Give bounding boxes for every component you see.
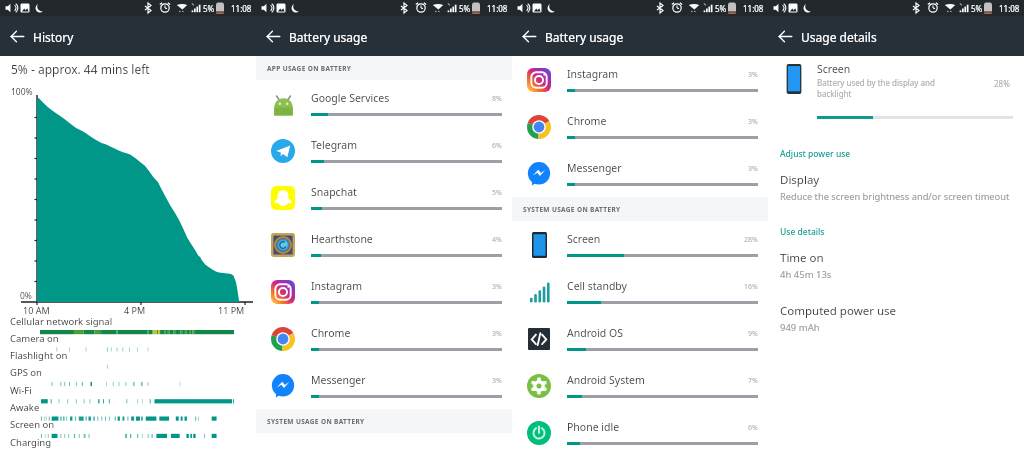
- staticText: Battery usage: [289, 29, 368, 45]
- button[interactable]: Hearthstone: [256, 221, 512, 268]
- button[interactable]: Instagram: [512, 56, 768, 103]
- staticText: 8%: [492, 94, 502, 104]
- staticText: 3%: [748, 70, 758, 80]
- staticText: Hearthstone: [311, 232, 373, 246]
- button[interactable]: Display: [780, 172, 1016, 203]
- staticText: Screen: [567, 232, 601, 246]
- staticText: History: [33, 29, 74, 45]
- staticText: 5%: [715, 3, 727, 14]
- staticText: 3%: [492, 282, 502, 292]
- button[interactable]: Time on: [780, 250, 1016, 281]
- staticText: Android System: [567, 373, 645, 387]
- button[interactable]: Screen: [512, 221, 768, 268]
- staticText: 11:08: [999, 3, 1020, 14]
- button[interactable]: Adjust power use: [780, 148, 851, 160]
- staticText: 5% - approx. 44 mins left: [11, 61, 150, 77]
- staticText: 7%: [748, 376, 758, 386]
- staticText: Instagram: [311, 279, 363, 293]
- button[interactable]: Snapchat: [256, 174, 512, 221]
- button[interactable]: Back: [512, 19, 546, 53]
- staticText: Computed power use: [780, 303, 897, 319]
- staticText: GPS on: [10, 366, 42, 379]
- staticText: Charging: [10, 436, 52, 449]
- staticText: 28%: [744, 235, 758, 245]
- staticText: Display: [780, 172, 820, 188]
- staticText: Flashlight on: [10, 349, 68, 362]
- staticText: APP USAGE ON BATTERY: [267, 64, 352, 73]
- button[interactable]: Phone idle: [512, 409, 768, 456]
- staticText: Chrome: [567, 114, 607, 128]
- staticText: 0%: [20, 290, 32, 302]
- button[interactable]: Instagram: [256, 268, 512, 315]
- staticText: Chrome: [311, 326, 351, 340]
- staticText: 4 PM: [124, 304, 146, 316]
- staticText: Wi-Fi: [10, 384, 32, 397]
- staticText: 4%: [492, 235, 502, 245]
- staticText: Android OS: [567, 326, 623, 340]
- staticText: 3%: [492, 376, 502, 386]
- staticText: 16%: [744, 282, 758, 292]
- staticText: Messenger: [311, 373, 366, 387]
- staticText: 9%: [748, 329, 758, 339]
- button[interactable]: Computed power use: [780, 303, 1016, 334]
- button[interactable]: Back: [256, 19, 290, 53]
- staticText: 11:08: [231, 3, 252, 14]
- staticText: Cellular network signal: [10, 315, 113, 328]
- button[interactable]: Use details: [780, 226, 825, 238]
- staticText: 6%: [492, 141, 502, 151]
- button[interactable]: Android System: [512, 362, 768, 409]
- staticText: 3%: [492, 329, 502, 339]
- button[interactable]: Messenger: [256, 362, 512, 409]
- staticText: 3%: [748, 164, 758, 174]
- button[interactable]: Cell standby: [512, 268, 768, 315]
- button[interactable]: Telegram: [256, 127, 512, 174]
- staticText: Time on: [780, 250, 824, 266]
- staticText: 5%: [459, 3, 471, 14]
- staticText: 3%: [748, 117, 758, 127]
- staticText: Camera on: [10, 332, 59, 345]
- staticText: Battery usage: [545, 29, 624, 45]
- button[interactable]: Chrome: [256, 315, 512, 362]
- staticText: 11:08: [487, 3, 508, 14]
- button[interactable]: Android OS: [512, 315, 768, 362]
- staticText: 949 mAh: [780, 321, 820, 334]
- staticText: Usage details: [801, 29, 877, 45]
- staticText: Battery used by the display and backligh…: [817, 77, 943, 99]
- staticText: 28%: [994, 78, 1010, 89]
- button[interactable]: Google Services: [256, 80, 512, 127]
- staticText: 5%: [971, 3, 983, 14]
- staticText: SYSTEM USAGE ON BATTERY: [267, 417, 365, 426]
- staticText: Cell standby: [567, 279, 627, 293]
- button[interactable]: Messenger: [512, 150, 768, 197]
- staticText: Screen: [817, 62, 851, 76]
- staticText: 4h 45m 13s: [780, 268, 832, 281]
- staticText: Awake: [10, 401, 40, 414]
- staticText: Phone idle: [567, 420, 620, 434]
- staticText: SYSTEM USAGE ON BATTERY: [523, 205, 621, 214]
- staticText: Instagram: [567, 67, 619, 81]
- staticText: 11 PM: [218, 304, 245, 316]
- staticText: 5%: [203, 3, 215, 14]
- staticText: Messenger: [567, 161, 622, 175]
- button[interactable]: Back: [0, 19, 34, 53]
- staticText: 10 AM: [23, 304, 50, 316]
- button[interactable]: Back: [768, 19, 802, 53]
- button[interactable]: Chrome: [512, 103, 768, 150]
- staticText: Telegram: [311, 138, 357, 152]
- staticText: Google Services: [311, 91, 390, 105]
- staticText: Snapchat: [311, 185, 357, 199]
- staticText: 5%: [492, 188, 502, 198]
- staticText: 11:08: [743, 3, 764, 14]
- staticText: Reduce the screen brightness and/or scre…: [780, 190, 1010, 203]
- staticText: 100%: [11, 86, 33, 98]
- staticText: Screen on: [10, 418, 55, 431]
- staticText: 6%: [748, 423, 758, 433]
